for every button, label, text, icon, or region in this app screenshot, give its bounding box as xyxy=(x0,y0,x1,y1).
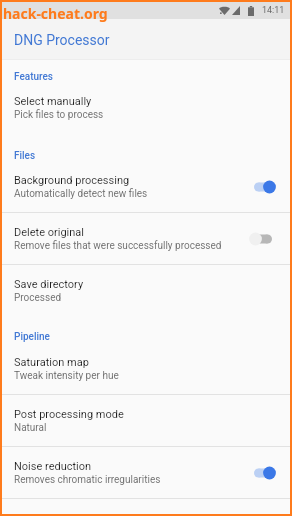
button[interactable]: Post processing mode xyxy=(2,395,290,447)
staticText: Remove files that were successfully proc… xyxy=(14,240,222,252)
staticText: Background processing xyxy=(14,174,130,187)
staticText: Noise reduction xyxy=(14,460,92,473)
button[interactable]: Toggle on xyxy=(255,178,281,196)
staticText: Features xyxy=(14,71,53,82)
staticText: Select manually xyxy=(14,95,92,108)
staticText: Post processing mode xyxy=(14,408,124,421)
button[interactable]: Background processing xyxy=(2,161,290,213)
button[interactable]: Toggle off xyxy=(255,230,281,248)
staticText: Natural xyxy=(14,422,47,434)
staticText: 14:11 xyxy=(262,5,285,16)
staticText: Pipeline xyxy=(14,331,50,343)
button[interactable]: Delete original xyxy=(2,213,290,265)
staticText: Processed xyxy=(14,292,62,304)
staticText: hack-cheat.org xyxy=(3,4,108,23)
staticText: Tweak intensity per hue xyxy=(14,370,119,382)
staticText: Pick files to process xyxy=(14,109,104,121)
button[interactable]: Select manually xyxy=(2,82,290,134)
staticText: Delete original xyxy=(14,226,84,239)
staticText: DNG Processor xyxy=(14,32,110,48)
staticText: Saturation map xyxy=(14,356,89,369)
button[interactable]: Save directory xyxy=(2,265,290,317)
staticText: Files xyxy=(14,150,36,161)
staticText: Removes chromatic irregularities xyxy=(14,474,161,486)
button[interactable]: Toggle on xyxy=(255,464,281,482)
button[interactable]: Saturation map xyxy=(2,343,290,395)
staticText: Automatically detect new files xyxy=(14,188,148,200)
staticText: Save directory xyxy=(14,278,84,291)
button[interactable]: Noise reduction xyxy=(2,447,290,499)
